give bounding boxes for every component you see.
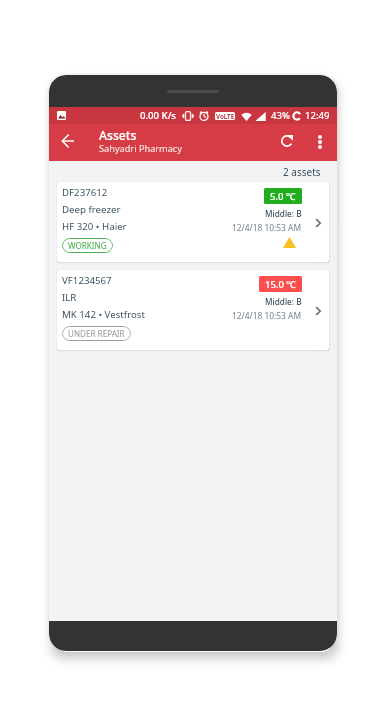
staticText: Assets <box>99 127 137 144</box>
staticText: WORKING <box>68 240 107 251</box>
staticText: 2 assets <box>283 165 321 179</box>
staticText: Sahyadri Pharmacy <box>99 142 182 155</box>
button[interactable]: VF1234567 <box>57 270 329 350</box>
staticText: VF1234567 <box>62 274 112 287</box>
staticText: DF237612 <box>62 186 108 199</box>
button[interactable]: More options <box>306 128 334 156</box>
staticText: 0.00 K/s <box>140 109 176 122</box>
staticText: UNDER REPAIR <box>68 328 125 339</box>
staticText: HF 320 • Haier <box>62 220 127 233</box>
staticText: Middle: B <box>265 296 302 307</box>
button[interactable]: DF237612 <box>57 182 329 262</box>
staticText: 12/4/18 10:53 AM <box>232 222 302 233</box>
staticText: ILR <box>62 291 77 304</box>
staticText: Deep freezer <box>62 203 121 216</box>
staticText: 43% <box>271 109 290 122</box>
staticText: 5.0 ℃ <box>270 190 296 203</box>
staticText: 15.0 ℃ <box>265 278 296 291</box>
staticText: MK 142 • Vestfrost <box>62 308 145 321</box>
staticText: Middle: B <box>265 208 302 219</box>
button[interactable]: Refresh <box>273 127 301 155</box>
button[interactable]: Back <box>54 127 82 155</box>
staticText: 12:49 <box>305 109 330 122</box>
staticText: VoLTE <box>216 112 235 120</box>
staticText: 12/4/18 10:53 AM <box>232 310 302 321</box>
